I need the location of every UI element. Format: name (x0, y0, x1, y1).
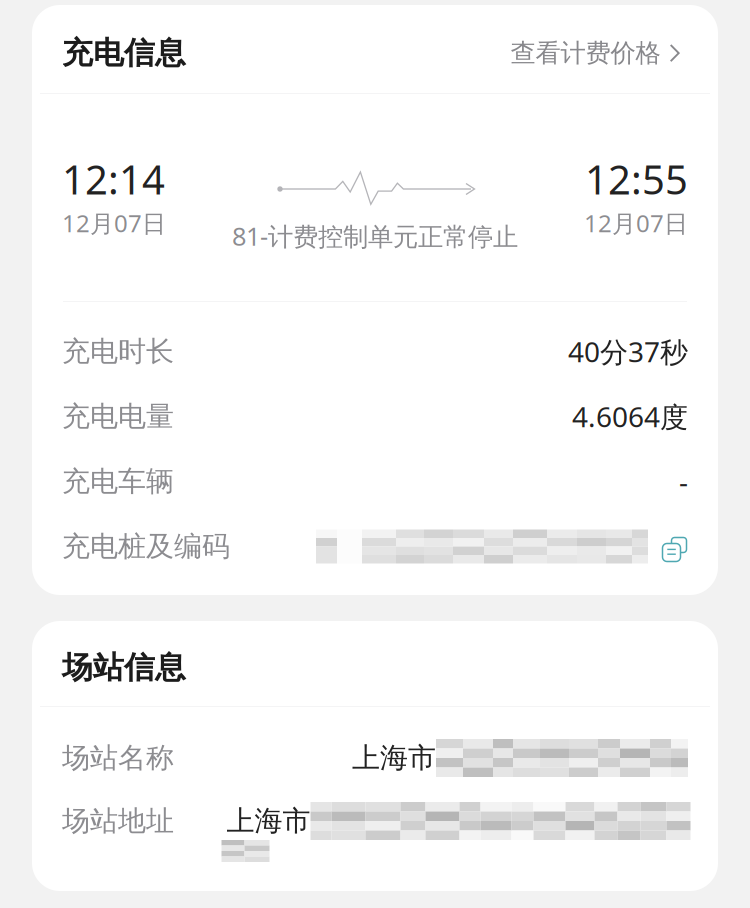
staticText: 查看计费价格 (510, 37, 660, 68)
staticText: 场站名称 (62, 741, 174, 775)
staticText: 40分37秒 (568, 333, 688, 370)
staticText: 4.6064度 (572, 398, 688, 435)
staticText: 充电桩及编码 (62, 529, 230, 564)
button[interactable]: 查看计费价格 (510, 37, 688, 68)
staticText: 场站地址 (62, 804, 174, 838)
staticText: 12:14 (62, 152, 165, 205)
staticText: 上海市 (226, 804, 310, 838)
staticText: 充电车辆 (62, 464, 174, 499)
staticText: 充电信息 (62, 34, 186, 72)
staticText: 充电电量 (62, 399, 174, 434)
staticText: 12月07日 (584, 207, 688, 239)
staticText: 12:55 (585, 152, 688, 205)
staticText: 场站信息 (62, 649, 186, 686)
staticText: 12月07日 (62, 207, 166, 239)
staticText: 81-计费控制单元正常停止 (232, 219, 518, 253)
staticText: - (679, 463, 688, 500)
staticText: 上海市 (352, 741, 436, 775)
staticText: 充电时长 (62, 334, 174, 369)
button[interactable]: 复制充电桩编码 (659, 534, 688, 558)
